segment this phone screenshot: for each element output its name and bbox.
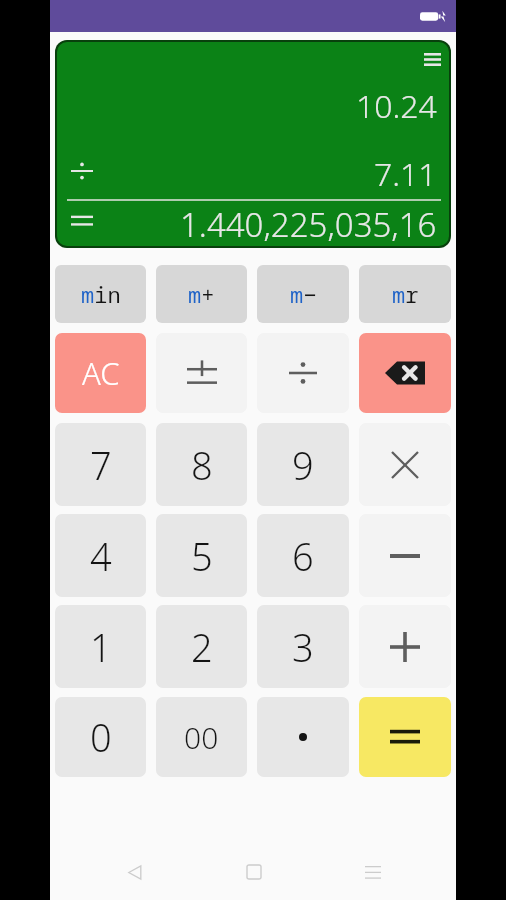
staticText: 7 [90,439,112,491]
staticText: m− [290,279,317,309]
button[interactable]: Plus minus [156,333,247,413]
button[interactable]: Decimal point [257,697,349,777]
staticText: 0 [90,711,112,763]
button[interactable]: Home [194,844,313,900]
button[interactable]: Divide [257,333,349,413]
button[interactable]: Backspace [359,333,451,413]
staticText: mr [392,279,419,309]
staticText: 4 [90,530,112,582]
button[interactable]: 4 [55,514,146,597]
button[interactable]: Recents [313,844,432,900]
staticText: 1.440,225,035,16 [180,202,437,246]
staticText: 5 [191,530,213,582]
staticText: 3 [292,621,314,673]
button[interactable]: 3 [257,605,349,688]
button[interactable]: Menu [415,42,449,76]
staticText: 1 [90,621,112,673]
staticText: min [81,279,121,309]
button[interactable]: m− [257,265,349,323]
button[interactable]: 9 [257,423,349,506]
button[interactable]: 1 [55,605,146,688]
button[interactable]: 5 [156,514,247,597]
staticText: 6 [292,530,314,582]
button[interactable]: m+ [156,265,247,323]
button[interactable]: mr [359,265,451,323]
staticText: m+ [188,279,215,309]
button[interactable]: Equals [359,697,451,777]
button[interactable]: Plus [359,605,451,688]
button[interactable]: min [55,265,146,323]
button[interactable]: 0 [55,697,146,777]
button[interactable]: 6 [257,514,349,597]
button[interactable]: 7 [55,423,146,506]
button[interactable]: All clear [55,333,146,413]
staticText: 9 [292,439,314,491]
button[interactable]: 8 [156,423,247,506]
button[interactable]: 00 [156,697,247,777]
staticText: 8 [191,439,213,491]
staticText: 7.11 [374,152,437,196]
button[interactable]: Back [74,844,194,900]
button[interactable]: Minus [359,514,451,597]
staticText: 10.24 [356,84,437,128]
staticText: 00 [184,717,219,758]
staticText: AC [82,352,120,394]
button[interactable]: Multiply [359,423,451,506]
staticText: 2 [191,621,213,673]
button[interactable]: 2 [156,605,247,688]
